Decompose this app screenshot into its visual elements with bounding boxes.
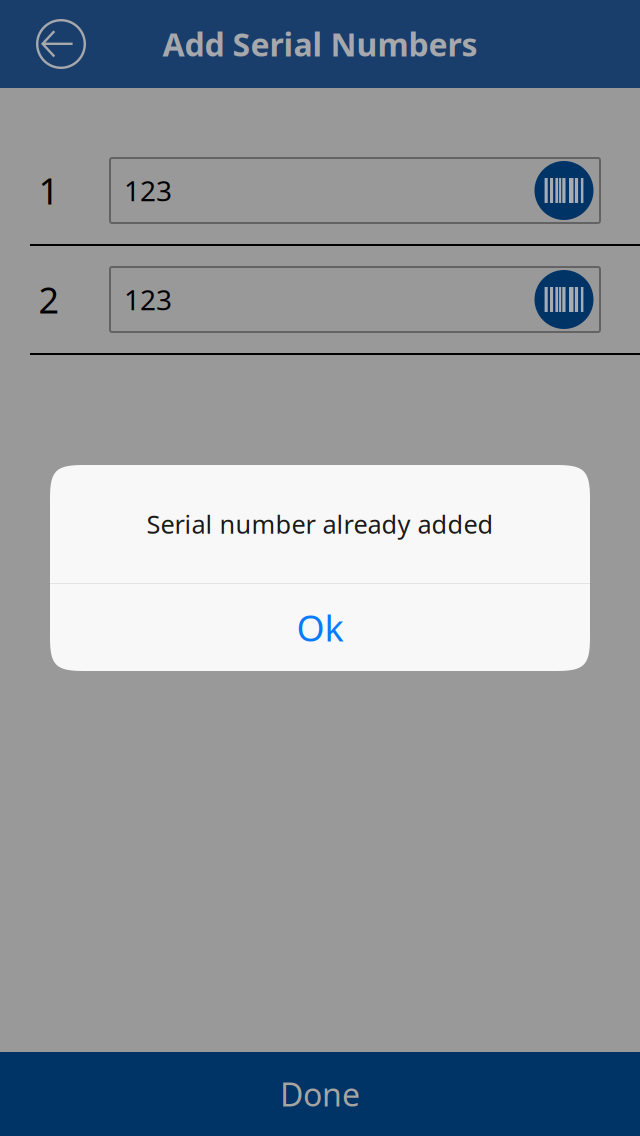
button[interactable]: Done: [0, 1052, 640, 1136]
button[interactable]: Back: [0, 0, 96, 88]
button[interactable]: Scan barcode: [534, 270, 594, 329]
staticText: Ok: [296, 604, 343, 651]
staticText: Done: [280, 1073, 360, 1115]
staticText: 123: [124, 281, 172, 318]
button[interactable]: Scan barcode: [534, 161, 594, 220]
staticText: 1: [38, 167, 59, 214]
button[interactable]: Ok: [50, 584, 590, 671]
staticText: 2: [38, 276, 59, 323]
staticText: Serial number already added: [146, 507, 493, 541]
staticText: 123: [124, 172, 172, 209]
staticText: Add Serial Numbers: [162, 23, 477, 65]
